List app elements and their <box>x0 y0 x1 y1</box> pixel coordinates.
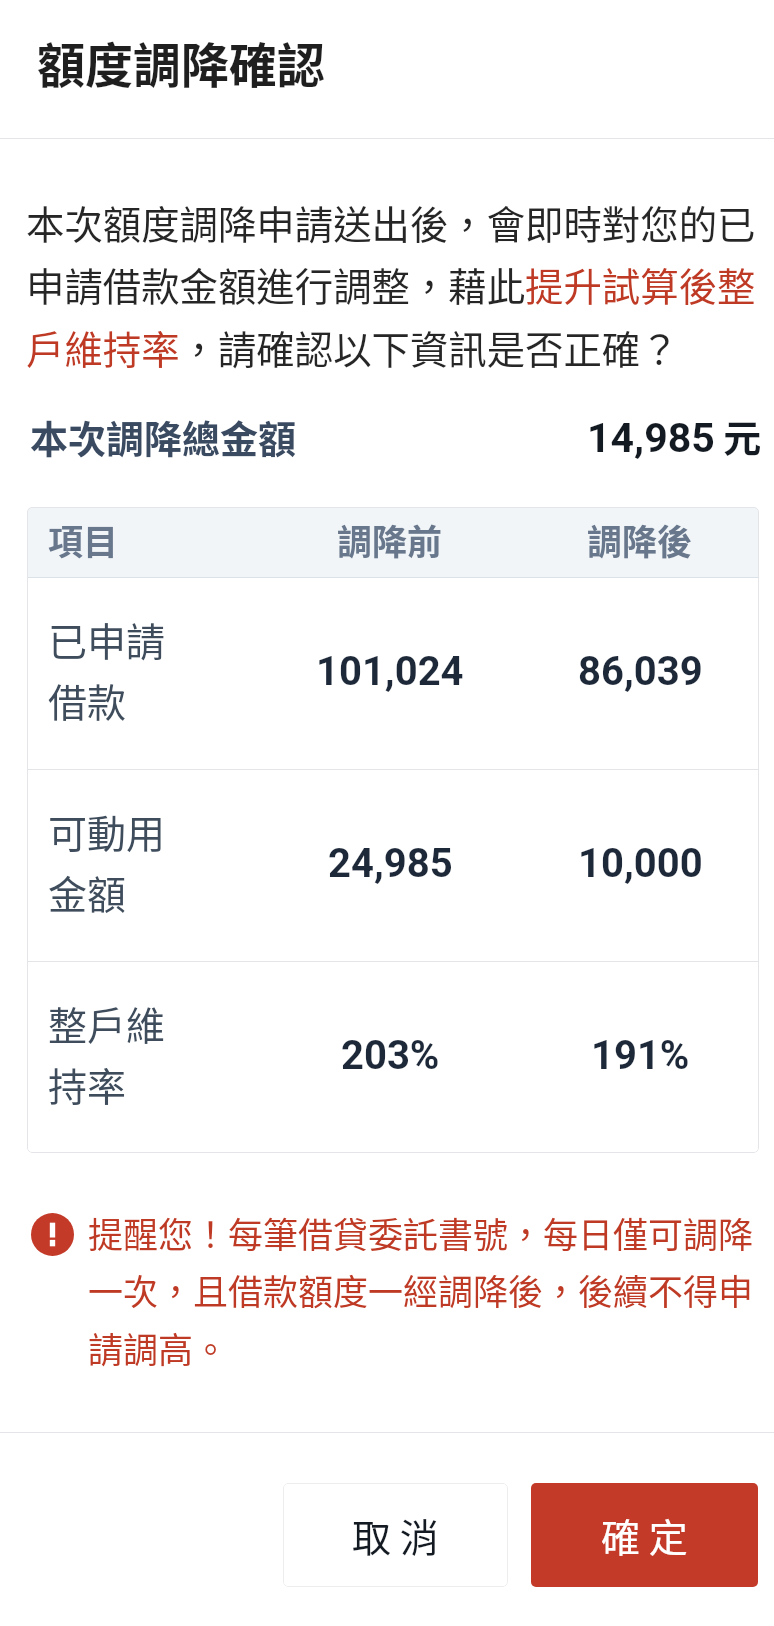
staticText: 整戶維 持率 <box>48 995 166 1112</box>
staticText: 本次額度調降申請送出後，會即時對您的已申請借款金額進行調整，藉此提升試算後整戶維… <box>26 194 758 376</box>
button[interactable]: 取 消 <box>283 1483 508 1587</box>
other: 注意事項 <box>31 1213 74 1256</box>
staticText: 101,024 <box>316 648 464 695</box>
staticText: 可動用 金額 <box>48 803 166 920</box>
staticText: 項目 <box>48 514 119 565</box>
staticText: 10,000 <box>578 840 703 887</box>
staticText: 確 定 <box>601 1507 688 1563</box>
staticText: 提醒您！每筆借貸委託書號，每日僅可調降一次，且借款額度一經調降後，後續不得申請調… <box>88 1207 760 1374</box>
staticText: 額度調降確認 <box>37 27 326 97</box>
staticText: 調降前 <box>337 514 443 565</box>
staticText: 本次調降總金額 <box>30 409 297 464</box>
staticText: 86,039 <box>578 648 703 695</box>
staticText: 取 消 <box>352 1507 439 1563</box>
staticText: 191% <box>591 1032 690 1079</box>
button[interactable]: 確 定 <box>531 1483 758 1587</box>
staticText: 24,985 <box>328 840 453 887</box>
staticText: 調降後 <box>587 514 693 565</box>
staticText: 14,985 元 <box>587 408 762 463</box>
staticText: 已申請 借款 <box>48 611 166 728</box>
staticText: 203% <box>341 1032 440 1079</box>
